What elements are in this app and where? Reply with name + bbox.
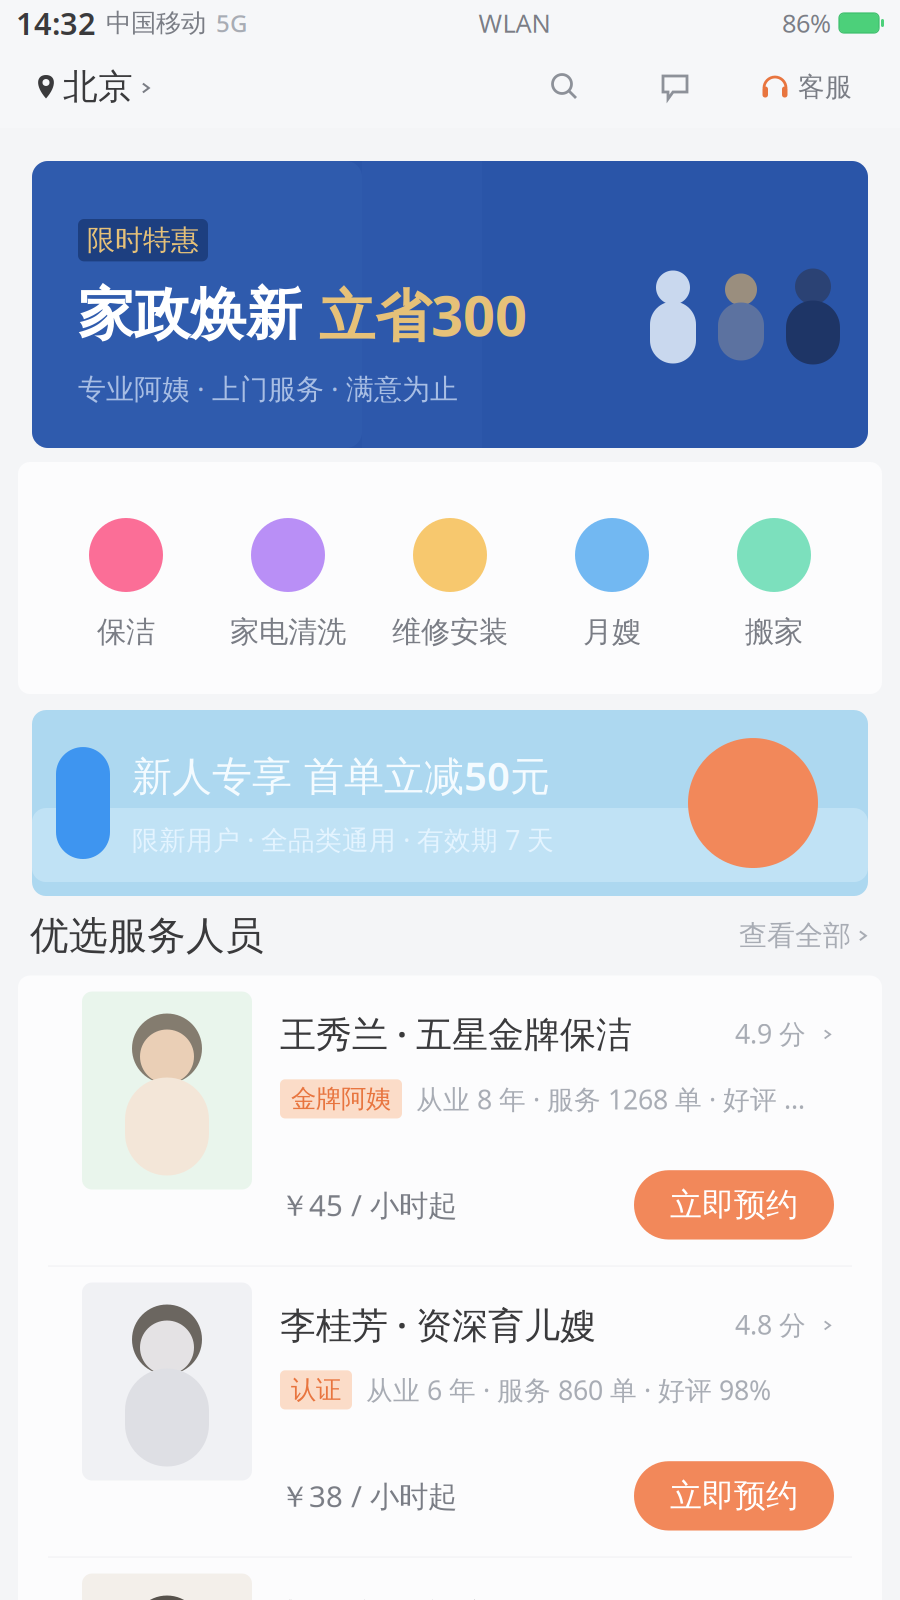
staticText: 从业 6 年 · 服务 860 单 · 好评 98% — [366, 1372, 771, 1408]
staticText: 4.9 分 — [735, 1016, 806, 1051]
staticText: 限新用户 · 全品类通用 · 有效期 7 天 — [132, 822, 554, 857]
staticText: 北京 — [63, 66, 133, 108]
button[interactable]: 家电清洗 — [207, 518, 369, 650]
button[interactable]: 北京 — [36, 66, 161, 108]
staticText: 家政焕新 — [78, 280, 302, 349]
staticText: 中国移动 — [106, 7, 206, 38]
staticText: 李桂芳 · 资深育儿嫂 — [280, 1300, 596, 1348]
button[interactable]: 搬家 — [693, 518, 855, 650]
staticText: 客服 — [798, 71, 852, 103]
button[interactable]: 维修安装 — [369, 518, 531, 650]
staticText: 认证 — [291, 1374, 341, 1405]
staticText: 金牌阿姨 — [291, 1083, 391, 1114]
staticText: ￥45 / 小时起 — [280, 1185, 457, 1224]
button[interactable]: 消息 — [653, 65, 697, 109]
staticText: 5G — [216, 7, 247, 39]
staticText: ￥38 / 小时起 — [280, 1476, 457, 1515]
staticText: 王秀兰 · 五星金牌保洁 — [280, 1009, 632, 1057]
staticText: 86% — [782, 6, 831, 40]
staticText: WLAN — [478, 6, 550, 40]
button[interactable]: 王秀兰 · 五星金牌保洁 — [18, 975, 882, 1265]
button[interactable]: 搜索 — [543, 65, 587, 109]
staticText: 优选服务人员 — [30, 912, 264, 959]
button[interactable]: 查看全部 — [739, 919, 870, 953]
button[interactable]: 李桂芳 · 资深育儿嫂 — [18, 1266, 882, 1556]
button[interactable]: 客服 — [759, 65, 852, 109]
staticText: 立即预约 — [670, 1476, 798, 1515]
staticText: 新人专享 首单立减50元 — [132, 749, 550, 802]
button[interactable]: 月嫂 — [531, 518, 693, 650]
staticText: 立即预约 — [670, 1185, 798, 1224]
staticText: 4.8 分 — [735, 1307, 806, 1342]
staticText: 14:32 — [16, 3, 96, 43]
staticText: 查看全部 — [739, 919, 851, 953]
staticText: 搬家 — [745, 614, 803, 650]
staticText: 保洁 — [97, 614, 155, 650]
button[interactable]: 限时特惠 — [0, 161, 900, 448]
staticText: 维修安装 — [392, 614, 508, 650]
button[interactable]: 保洁 — [45, 518, 207, 650]
staticText: 限时特惠 — [87, 223, 199, 257]
button[interactable]: 新人专享 首单立减50元 — [0, 710, 900, 896]
staticText: 从业 8 年 · 服务 1268 单 · 好评 99% — [416, 1081, 812, 1117]
staticText: 立省300 — [302, 277, 527, 352]
staticText: 专业阿姨 · 上门服务 · 满意为止 — [78, 370, 458, 407]
staticText: 家电清洗 — [230, 614, 346, 650]
staticText: 月嫂 — [583, 614, 641, 650]
button[interactable]: 赵丽华 · 金牌月嫂 — [18, 1557, 882, 1600]
